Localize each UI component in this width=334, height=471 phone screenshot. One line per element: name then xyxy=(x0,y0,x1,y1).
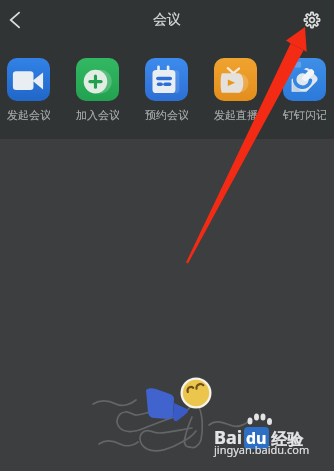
staticText: jingyan.baidu.com xyxy=(214,442,310,457)
staticText: 发起会议 xyxy=(7,108,50,122)
button[interactable]: 钉钉闪记 xyxy=(283,58,326,122)
staticText: 经验 xyxy=(271,430,303,450)
button[interactable]: 加入会议 xyxy=(76,58,119,122)
staticText: 预约会议 xyxy=(145,108,188,122)
staticText: Bai xyxy=(214,425,243,450)
button[interactable]: 预约会议 xyxy=(145,58,188,122)
staticText: 加入会议 xyxy=(76,108,119,122)
button[interactable]: 发起会议 xyxy=(7,58,50,122)
staticText: 钉钉闪记 xyxy=(283,108,326,122)
staticText: 发起直播 xyxy=(214,108,257,122)
staticText: du xyxy=(246,427,267,449)
button[interactable]: Back xyxy=(0,5,30,35)
button[interactable]: Settings xyxy=(298,6,326,34)
button[interactable]: 发起直播 xyxy=(214,58,257,122)
staticText: 会议 xyxy=(153,11,181,29)
